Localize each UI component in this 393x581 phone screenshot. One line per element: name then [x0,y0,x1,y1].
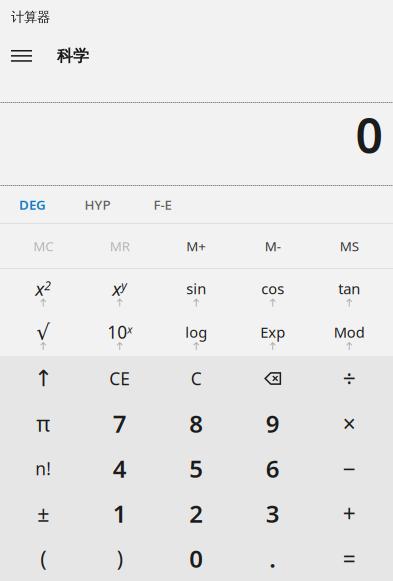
staticText: ± [37,499,49,528]
button[interactable]: n! [5,446,81,491]
staticText: DEG [19,196,46,213]
button[interactable]: CE [81,356,158,401]
button[interactable]: xy [81,269,158,312]
staticText: 0 [189,543,203,574]
button[interactable]: C [158,356,234,401]
staticText: ÷ [343,363,356,393]
button[interactable]: ÷ [311,356,387,401]
staticText: xy [112,276,127,301]
button[interactable]: Menu [0,34,48,78]
staticText: 科学 [57,46,89,66]
staticText: x2 [35,276,51,301]
button[interactable]: = [311,536,387,581]
staticText: ) [117,544,123,573]
button[interactable]: 7 [81,401,158,446]
button[interactable]: x2 [5,269,81,312]
button[interactable]: MR [81,224,158,268]
button[interactable]: 0 [158,536,234,581]
staticText: F-E [153,196,171,213]
staticText: 5 [189,453,203,484]
button[interactable]: × [311,401,387,446]
button[interactable]: 8 [158,401,234,446]
staticText: 0 [355,103,382,167]
staticText: 1 [113,498,127,529]
button[interactable]: √ [5,312,81,356]
staticText: 7 [113,408,127,439]
button[interactable]: 10x [81,312,158,356]
staticText: MR [110,237,130,255]
button[interactable]: ↑ [5,356,81,401]
staticText: . [269,543,276,574]
staticText: log [185,322,207,342]
staticText: sin [186,279,206,298]
button[interactable]: ( [5,536,81,581]
button[interactable]: Mod [311,312,387,356]
button[interactable]: Exp [234,312,311,356]
button[interactable]: tan [311,269,387,312]
staticText: 3 [266,498,280,529]
staticText: MC [33,237,53,255]
button[interactable]: 6 [234,446,311,491]
button[interactable]: 5 [158,446,234,491]
button[interactable]: Backspace [234,356,311,401]
staticText: π [36,409,50,438]
button[interactable]: MC [5,224,81,268]
staticText: C [191,367,202,390]
staticText: 6 [266,453,280,484]
staticText: √ [36,320,50,344]
button[interactable]: ) [81,536,158,581]
button[interactable]: F-E [130,186,195,223]
button[interactable]: ± [5,491,81,536]
staticText: HYP [84,196,110,213]
staticText: MS [340,237,359,255]
button[interactable]: π [5,401,81,446]
staticText: = [343,543,356,573]
staticText: 9 [266,408,280,439]
staticText: Mod [334,322,365,342]
staticText: 4 [113,453,127,484]
staticText: Exp [260,322,285,342]
staticText: 2 [189,498,203,529]
staticText: ↑ [34,366,53,391]
button[interactable]: log [158,312,234,356]
button[interactable]: 9 [234,401,311,446]
button[interactable]: HYP [65,186,130,223]
staticText: 10x [107,320,132,343]
staticText: CE [109,367,130,390]
staticText: ( [40,544,46,573]
staticText: M- [265,237,281,255]
button[interactable]: 2 [158,491,234,536]
button[interactable]: MS [311,224,387,268]
staticText: − [343,453,356,483]
button[interactable]: M+ [158,224,234,268]
button[interactable]: sin [158,269,234,312]
staticText: 计算器 [11,9,50,25]
button[interactable]: + [311,491,387,536]
staticText: cos [261,279,284,298]
button[interactable]: cos [234,269,311,312]
button[interactable]: . [234,536,311,581]
staticText: + [343,498,356,528]
staticText: tan [338,279,360,298]
button[interactable]: − [311,446,387,491]
staticText: n! [35,457,51,480]
button[interactable]: M- [234,224,311,268]
button[interactable]: 4 [81,446,158,491]
button[interactable]: 3 [234,491,311,536]
button[interactable]: 1 [81,491,158,536]
staticText: M+ [186,237,206,255]
staticText: 8 [189,408,203,439]
staticText: × [343,408,356,438]
button[interactable]: DEG [0,186,65,223]
